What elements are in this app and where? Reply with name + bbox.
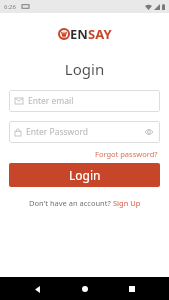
- button[interactable]: Back: [26, 278, 48, 300]
- staticText: Don't have an account?: [29, 198, 113, 208]
- staticText: SAY: [88, 25, 112, 43]
- button[interactable]: Forgot password?: [93, 147, 160, 161]
- staticText: 6:26: [4, 3, 16, 11]
- button[interactable]: Sign Up: [113, 198, 141, 208]
- staticText: EN: [70, 25, 88, 43]
- staticText: Login: [69, 167, 101, 183]
- staticText: Enter Password: [26, 126, 144, 138]
- button[interactable]: Show password: [144, 128, 154, 136]
- button[interactable]: Enter email: [9, 90, 160, 112]
- button[interactable]: Enter Password: [9, 121, 160, 143]
- button[interactable]: Recents: [121, 278, 143, 300]
- staticText: Forgot password?: [95, 149, 158, 159]
- button[interactable]: Login: [9, 163, 160, 187]
- staticText: Sign Up: [113, 198, 141, 208]
- staticText: Login: [0, 59, 169, 79]
- staticText: Enter email: [28, 95, 154, 107]
- button[interactable]: Home: [74, 278, 96, 300]
